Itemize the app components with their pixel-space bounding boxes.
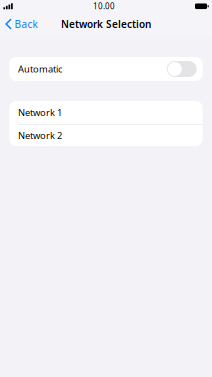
button[interactable]: Network 2 (9, 125, 203, 146)
staticText: Network Selection (61, 17, 151, 31)
staticText: Network 2 (18, 129, 62, 142)
button[interactable]: Network 1 (9, 101, 203, 124)
button[interactable]: Back (0, 12, 43, 35)
staticText: Back (14, 17, 37, 31)
staticText: 10.00 (93, 1, 115, 11)
staticText: Automatic (18, 63, 62, 75)
button[interactable]: Automatic (167, 61, 197, 77)
staticText: Network 1 (18, 106, 62, 119)
